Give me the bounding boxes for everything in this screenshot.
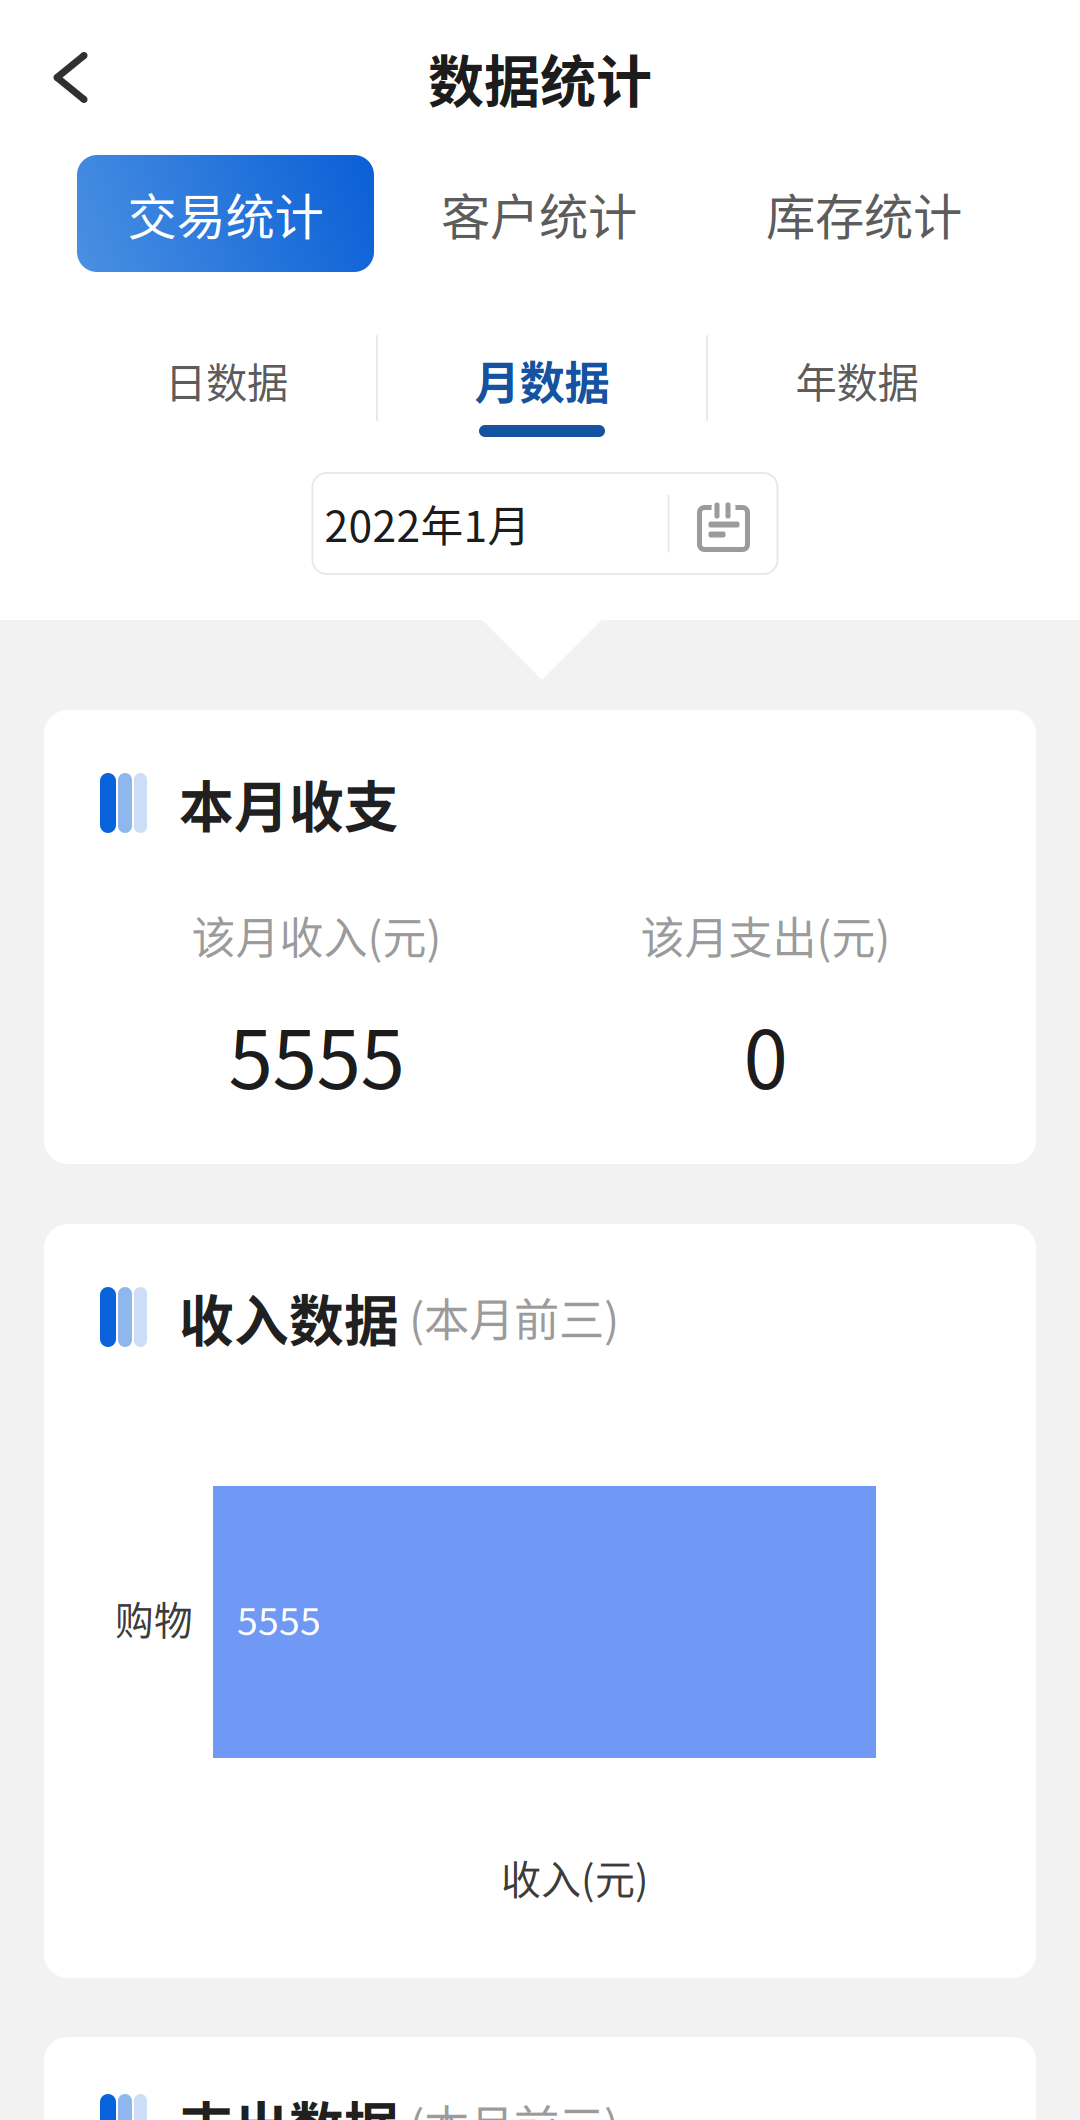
staticText: 2022年1月	[324, 493, 530, 554]
staticText: 购物	[115, 1590, 193, 1646]
staticText: 0	[743, 996, 787, 1112]
staticText: 该月支出(元)	[640, 903, 890, 967]
staticText: 数据统计	[428, 37, 652, 118]
staticText: 客户统计	[441, 178, 637, 249]
staticText: 5555	[228, 996, 404, 1112]
button[interactable]: 交易统计	[77, 155, 374, 272]
staticText: 月数据	[474, 347, 609, 413]
staticText: 支出数据	[179, 2084, 399, 2120]
button[interactable]: 日数据	[77, 335, 376, 455]
staticText: 该月收入(元)	[191, 903, 441, 967]
staticText: 库存统计	[766, 178, 962, 249]
staticText: 收入数据	[179, 1277, 399, 1357]
staticText: 5555	[237, 1592, 321, 1646]
staticText: 交易统计	[127, 178, 323, 249]
button[interactable]: 年数据	[708, 335, 1006, 455]
button[interactable]: 返回	[0, 31, 119, 123]
staticText: 收入(元)	[501, 1848, 649, 1906]
button[interactable]: 客户统计	[374, 155, 704, 272]
staticText: (本月前三)	[399, 1284, 619, 1350]
staticText: (本月前三)	[399, 2091, 619, 2120]
button[interactable]: 月数据	[378, 335, 706, 455]
staticText: 日数据	[165, 350, 288, 410]
button[interactable]: 库存统计	[704, 155, 1024, 272]
staticText: 本月收支	[179, 763, 399, 843]
staticText: 年数据	[795, 350, 918, 410]
